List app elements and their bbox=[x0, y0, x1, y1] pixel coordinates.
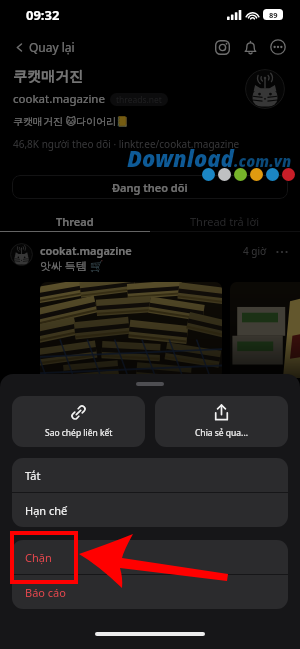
button[interactable]: Notifications bbox=[239, 36, 261, 58]
staticText: Chặn bbox=[25, 550, 52, 565]
staticText: Báo cáo bbox=[25, 585, 66, 600]
button[interactable]: Chia sẻ qua... bbox=[155, 396, 288, 447]
button[interactable]: Hạn chế bbox=[12, 493, 288, 527]
staticText: Download bbox=[127, 143, 234, 173]
staticText: 09:32 bbox=[26, 6, 60, 24]
button[interactable]: Báo cáo bbox=[12, 575, 288, 609]
button[interactable]: Đang theo dõi bbox=[12, 175, 288, 199]
staticText: Tắt bbox=[25, 468, 41, 483]
button[interactable]: More options bbox=[267, 36, 289, 58]
staticText: Sao chép liên kết bbox=[45, 427, 113, 439]
staticText: Hạn chế bbox=[25, 503, 68, 518]
button[interactable]: Tắt bbox=[12, 458, 288, 492]
staticText: 89 bbox=[269, 10, 278, 20]
button[interactable]: Thread trả lời bbox=[150, 210, 300, 232]
staticText: Đang theo dõi bbox=[112, 180, 188, 195]
staticText: 4 giờ bbox=[243, 244, 267, 258]
staticText: Thread bbox=[56, 214, 94, 229]
staticText: Quay lại bbox=[29, 39, 75, 55]
button[interactable]: Quay lại bbox=[10, 36, 79, 58]
staticText: 쿠캣매거진 bbox=[13, 68, 83, 86]
staticText: 46,8K người theo dõi · linktr.ee/cookat.… bbox=[13, 137, 240, 151]
staticText: threads.net bbox=[116, 94, 162, 106]
button[interactable]: Chặn bbox=[12, 540, 288, 574]
staticText: 쿠캣매거진 🐱다이어리📒 bbox=[13, 114, 129, 128]
staticText: cookat.magazine bbox=[40, 243, 132, 258]
button[interactable]: Post options bbox=[276, 246, 288, 258]
staticText: cookat.magazine bbox=[13, 91, 105, 107]
staticText: 앗싸 득템 🛒 bbox=[40, 258, 104, 273]
button[interactable]: Instagram bbox=[211, 36, 233, 58]
staticText: .com.vn bbox=[234, 151, 292, 171]
button[interactable]: Thread bbox=[0, 210, 150, 232]
staticText: Thread trả lời bbox=[190, 214, 260, 229]
staticText: Chia sẻ qua... bbox=[195, 427, 248, 439]
button[interactable]: Sao chép liên kết bbox=[12, 396, 145, 447]
